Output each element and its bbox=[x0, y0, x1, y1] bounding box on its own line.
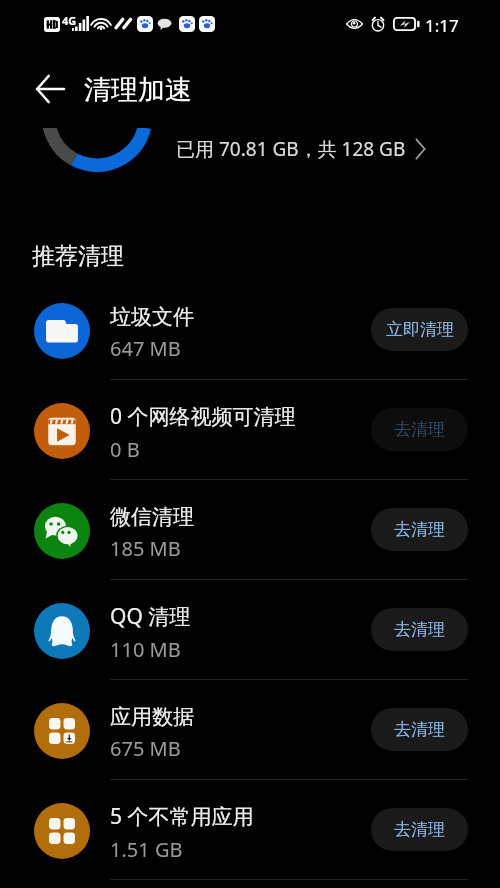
staticText: 去清理 bbox=[394, 819, 445, 840]
staticText: 已用 70.81 GB，共 128 GB bbox=[176, 136, 406, 162]
staticText: 0 B bbox=[110, 436, 140, 463]
staticText: 微信清理 bbox=[110, 504, 194, 530]
button[interactable]: QQ 清理 bbox=[0, 580, 500, 679]
staticText: 去清理 bbox=[394, 619, 445, 640]
button[interactable]: 去清理 bbox=[371, 608, 468, 651]
staticText: 4G bbox=[62, 13, 77, 28]
button[interactable]: 去清理 bbox=[371, 708, 468, 751]
staticText: 垃圾文件 bbox=[110, 304, 194, 330]
button[interactable]: 应用数据 bbox=[0, 680, 500, 779]
staticText: 0 个网络视频可清理 bbox=[110, 402, 296, 431]
button[interactable]: 0 个网络视频可清理 bbox=[0, 380, 500, 479]
staticText: QQ 清理 bbox=[110, 602, 191, 631]
staticText: 去清理 bbox=[394, 419, 445, 440]
staticText: 去清理 bbox=[394, 719, 445, 740]
button[interactable]: 微信清理 bbox=[0, 480, 500, 579]
button[interactable]: 垃圾文件 bbox=[0, 280, 500, 379]
button[interactable]: 5 个不常用应用 bbox=[0, 780, 500, 879]
button[interactable]: 去清理 bbox=[371, 808, 468, 851]
staticText: 清理加速 bbox=[84, 73, 192, 107]
staticText: 185 MB bbox=[110, 535, 181, 562]
button[interactable]: 去清理 bbox=[371, 408, 468, 451]
staticText: 110 MB bbox=[110, 636, 181, 663]
staticText: 去清理 bbox=[394, 519, 445, 540]
staticText: 立即清理 bbox=[386, 319, 454, 340]
staticText: 1.51 GB bbox=[110, 836, 183, 863]
staticText: 1:17 bbox=[425, 14, 459, 37]
staticText: 647 MB bbox=[110, 335, 181, 362]
staticText: 675 MB bbox=[110, 735, 181, 762]
button[interactable]: 立即清理 bbox=[371, 308, 468, 351]
button[interactable]: 去清理 bbox=[371, 508, 468, 551]
button[interactable]: Back bbox=[26, 65, 74, 113]
staticText: 5 个不常用应用 bbox=[110, 802, 254, 831]
staticText: 推荐清理 bbox=[32, 242, 124, 271]
staticText: 应用数据 bbox=[110, 704, 194, 730]
